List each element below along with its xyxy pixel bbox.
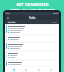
staticText: MY TASKS	[8, 21, 16, 23]
staticText: Tasks	[29, 16, 36, 19]
button[interactable]	[6, 25, 58, 34]
button[interactable]	[6, 52, 58, 59]
button[interactable]: MY TASKS	[7, 21, 16, 23]
button[interactable]	[6, 36, 58, 41]
button[interactable]: Menu	[5, 15, 59, 20]
button[interactable]: Lists	[35, 67, 42, 72]
button[interactable]: Calendar	[22, 67, 29, 72]
button[interactable]: Settings	[47, 67, 54, 72]
button[interactable]: Tasks	[10, 67, 17, 72]
button[interactable]	[6, 61, 58, 66]
staticText: WITH ALL YOUR TASKS	[10, 8, 55, 13]
button[interactable]	[6, 43, 58, 50]
staticText: GET ORGANIZED	[16, 2, 49, 7]
